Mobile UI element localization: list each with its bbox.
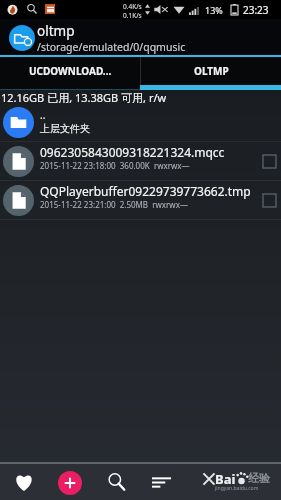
button[interactable]: .. (0, 103, 281, 141)
button[interactable]: Select (263, 194, 276, 207)
button[interactable]: Add (58, 471, 82, 495)
staticText: 经验 (248, 471, 270, 485)
button[interactable]: OLTMP (141, 57, 281, 85)
staticText: jingyan.baidu.com (215, 485, 259, 492)
button[interactable]: Select (263, 155, 276, 168)
button[interactable]: Baidu (203, 467, 281, 497)
staticText: 13% (205, 4, 223, 16)
staticText: Bai (215, 470, 236, 488)
button[interactable]: Favorites (8, 466, 40, 498)
staticText: 23:23 (243, 3, 269, 17)
button[interactable]: UCDOWNLOAD... (0, 57, 140, 85)
staticText: 上层文件夹 (40, 122, 90, 135)
button[interactable]: Sort (145, 466, 177, 498)
staticText: 2015-11-22 23:21:00 2.50MB rwxrwx— (40, 199, 188, 210)
staticText: 0962305843009318221324.mqcc (40, 144, 225, 160)
staticText: oltmp (37, 22, 75, 40)
staticText: /storage/emulated/0/qqmusic (37, 40, 186, 54)
staticText: .. (40, 108, 46, 122)
staticText: 12.16GB 已用, 13.38GB 可用, r/w (1, 90, 167, 103)
button[interactable]: oltmp (0, 19, 281, 55)
staticText: 0.4K/s (123, 2, 142, 11)
button[interactable]: Search (101, 466, 133, 498)
button[interactable]: 0962305843009318221324.mqcc (0, 142, 281, 180)
staticText: UCDOWNLOAD... (29, 64, 112, 78)
staticText: OLTMP (194, 64, 229, 78)
button[interactable]: QQPlayerbuffer09229739773662.tmp (0, 181, 281, 219)
staticText: 0.1K/s (123, 11, 142, 20)
staticText: QQPlayerbuffer09229739773662.tmp (40, 183, 251, 199)
staticText: 2015-11-22 23:18:00 360.00K rwxrwx— (40, 160, 190, 171)
